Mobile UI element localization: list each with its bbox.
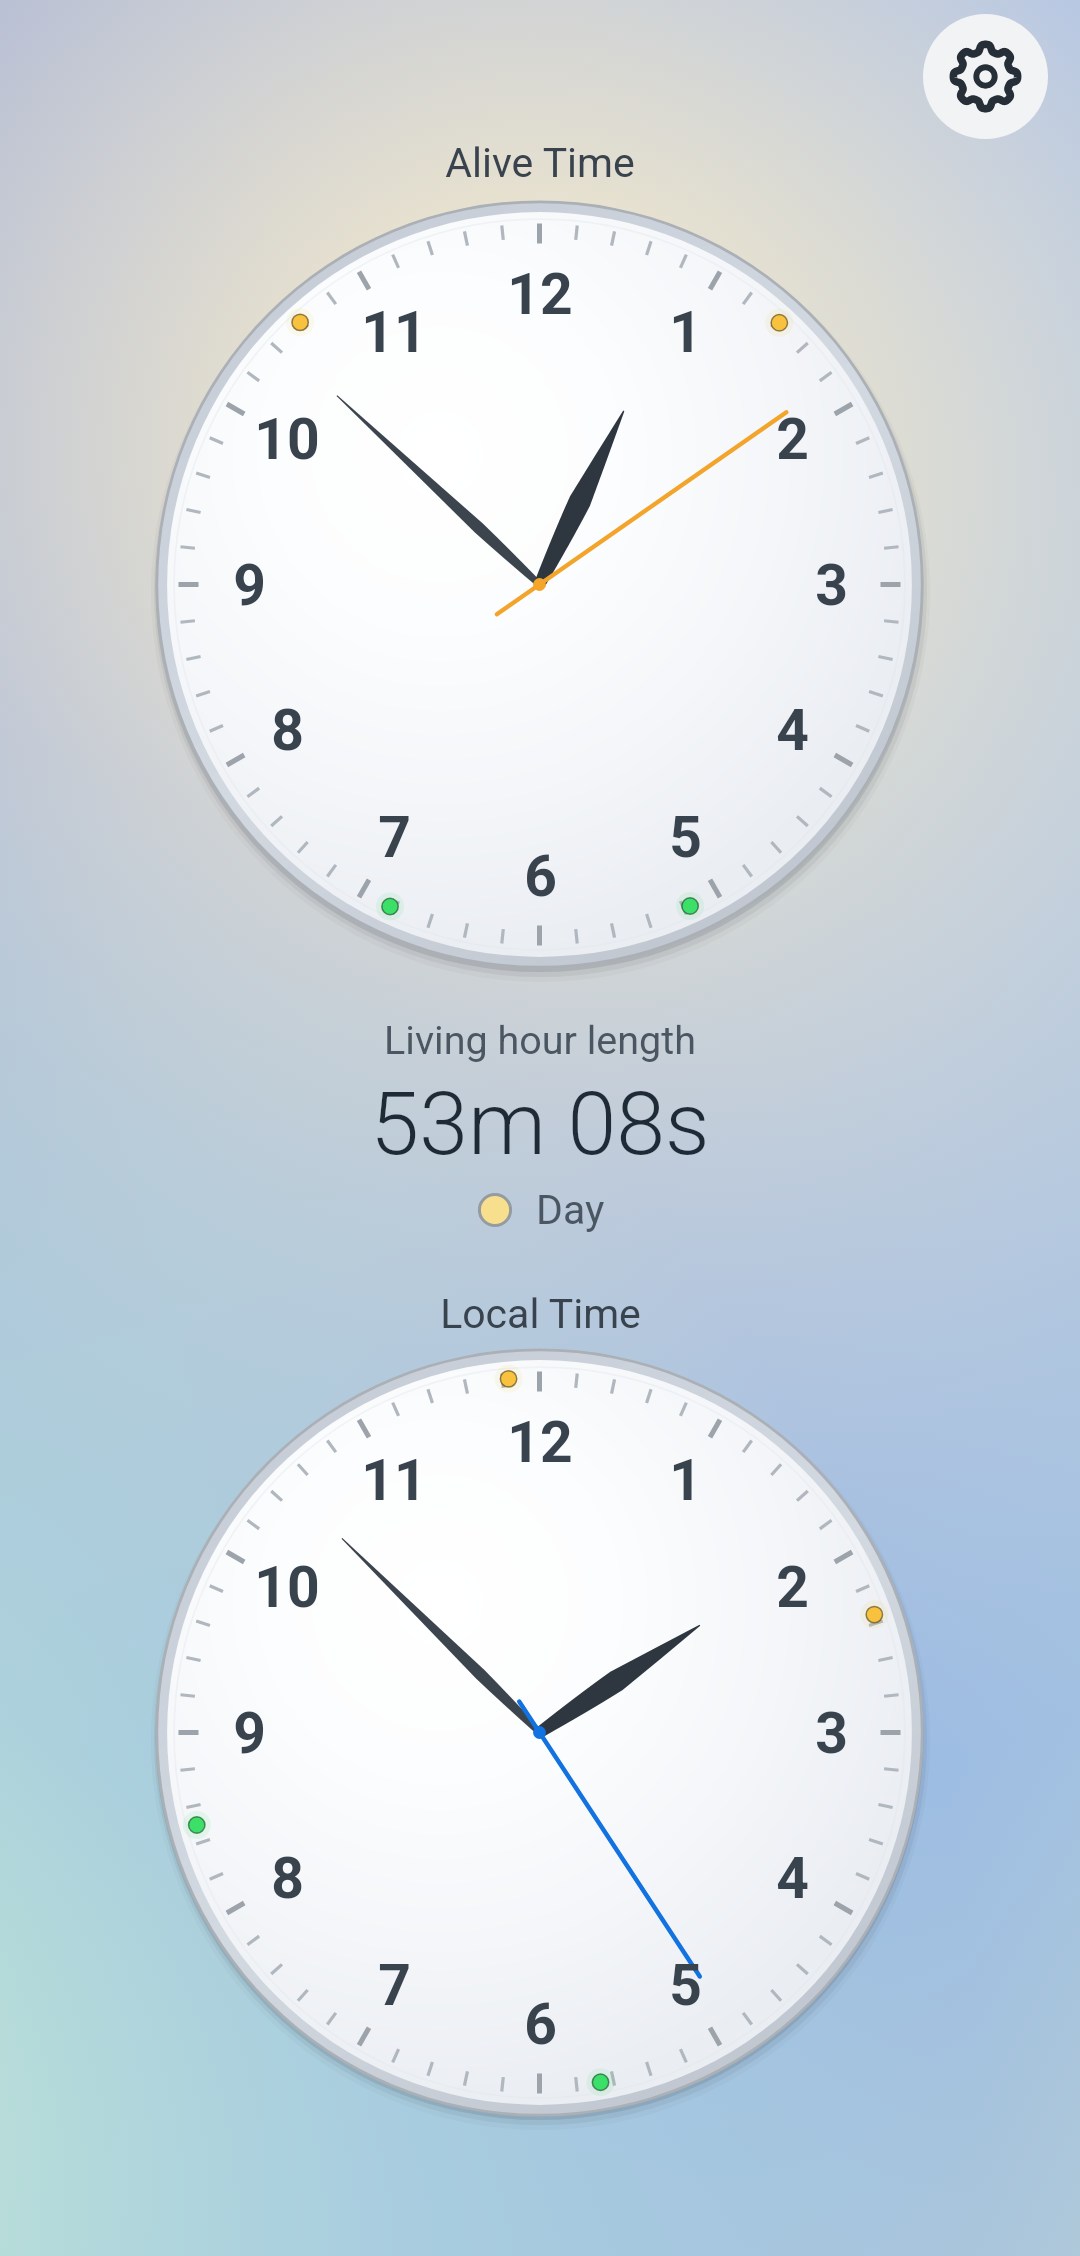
- staticText: 4: [776, 697, 809, 764]
- staticText: 7: [378, 1952, 411, 2019]
- staticText: 8: [271, 1845, 304, 1912]
- staticText: Local Time: [440, 1290, 641, 1338]
- staticText: 53m 08s: [370, 1072, 710, 1175]
- staticText: 7: [378, 804, 411, 871]
- staticText: 2: [776, 406, 809, 473]
- staticText: Alive Time: [445, 139, 635, 187]
- staticText: Living hour length: [384, 1017, 696, 1063]
- staticText: 9: [233, 552, 266, 619]
- staticText: 5: [669, 1952, 702, 2019]
- staticText: 12: [507, 261, 573, 328]
- staticText: 4: [776, 1845, 809, 1912]
- staticText: Day: [536, 1186, 605, 1234]
- staticText: 10: [254, 406, 320, 473]
- staticText: 10: [254, 1554, 320, 1621]
- staticText: 2: [776, 1554, 809, 1621]
- staticText: 11: [361, 1447, 427, 1514]
- staticText: 3: [815, 1700, 848, 1767]
- staticText: 6: [524, 843, 557, 910]
- button[interactable]: Settings: [923, 14, 1048, 139]
- staticText: 9: [233, 1700, 266, 1767]
- staticText: 6: [524, 1991, 557, 2058]
- staticText: 1: [669, 1447, 702, 1514]
- staticText: 1: [669, 299, 702, 366]
- staticText: 5: [669, 804, 702, 871]
- staticText: 11: [361, 299, 427, 366]
- staticText: 8: [271, 697, 304, 764]
- staticText: 12: [507, 1409, 573, 1476]
- staticText: 3: [815, 552, 848, 619]
